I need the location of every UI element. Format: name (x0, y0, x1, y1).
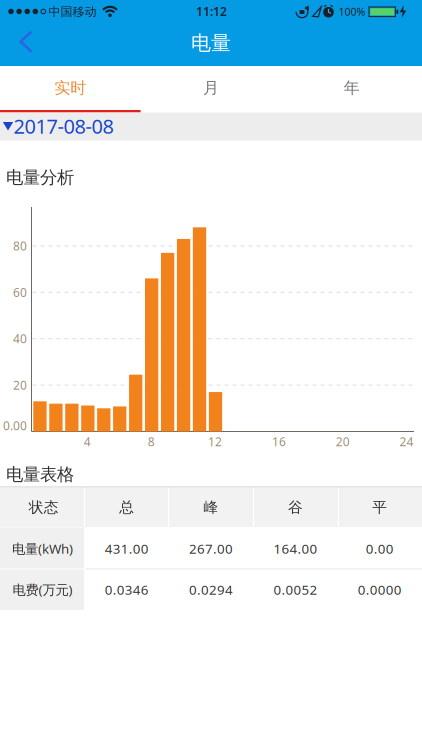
staticText: 0.00 (366, 540, 394, 557)
staticText: 60 (13, 284, 27, 300)
staticText: 20 (336, 433, 350, 449)
button[interactable]: 年 (281, 66, 422, 110)
staticText: 0.0346 (105, 581, 149, 598)
staticText: 月 (203, 78, 219, 98)
staticText: 电费(万元) (12, 581, 72, 598)
staticText: 11:12 (196, 3, 227, 19)
staticText: 谷 (288, 498, 303, 516)
staticText: 平 (372, 498, 387, 516)
staticText: 电量(kWh) (12, 540, 73, 557)
staticText: 年 (344, 78, 360, 98)
staticText: 电量 (191, 31, 231, 55)
button[interactable]: 月 (141, 66, 281, 110)
staticText: 40 (13, 331, 27, 347)
staticText: 8 (148, 433, 155, 449)
staticText: 431.00 (105, 540, 149, 557)
button[interactable]: 2017-08-08 (0, 112, 422, 140)
staticText: 中国移动 (48, 4, 96, 19)
staticText: 实时 (54, 78, 86, 98)
staticText: 80 (13, 238, 27, 254)
staticText: 100% (338, 5, 365, 19)
staticText: 16 (272, 433, 286, 449)
staticText: 峰 (204, 498, 219, 516)
staticText: 2017-08-08 (13, 113, 113, 139)
staticText: 24 (400, 433, 414, 449)
staticText: 0.00 (3, 417, 27, 433)
staticText: 电量表格 (6, 464, 74, 485)
staticText: 状态 (29, 498, 59, 516)
button[interactable]: 返回 (0, 23, 52, 66)
staticText: 267.00 (189, 540, 233, 557)
staticText: 0.0052 (273, 581, 317, 598)
button[interactable]: 实时 (0, 66, 141, 110)
staticText: 164.00 (273, 540, 317, 557)
staticText: 电量分析 (6, 167, 74, 188)
staticText: 4 (84, 433, 91, 449)
staticText: 0.0000 (358, 581, 402, 598)
staticText: 总 (119, 498, 134, 516)
staticText: 20 (13, 377, 27, 393)
staticText: 0.0294 (189, 581, 233, 598)
staticText: 12 (208, 433, 222, 449)
